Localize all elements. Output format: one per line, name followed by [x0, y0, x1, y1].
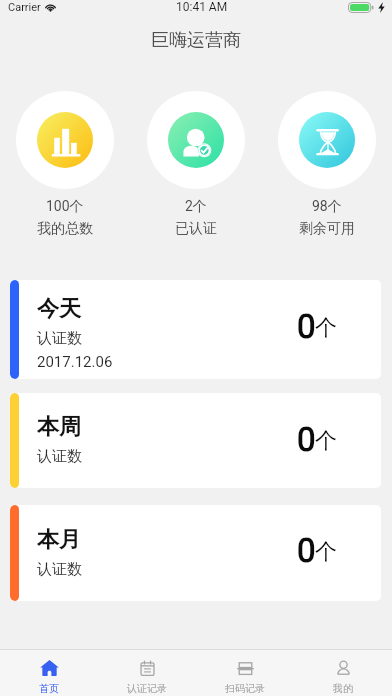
staticText: Carrier: [8, 1, 41, 14]
staticText: 2017.12.06: [37, 353, 113, 371]
staticText: 已认证: [175, 220, 217, 238]
staticText: 本周: [37, 413, 81, 441]
staticText: 个: [315, 314, 337, 342]
staticText: 100个: [46, 198, 84, 216]
button[interactable]: 今天: [10, 280, 381, 379]
button[interactable]: 认证记录: [98, 650, 196, 696]
staticText: 认证数: [37, 329, 82, 348]
staticText: 本月: [37, 526, 81, 554]
staticText: 扫码记录: [225, 682, 265, 695]
staticText: 个: [315, 538, 337, 566]
staticText: 我的总数: [37, 220, 93, 238]
staticText: 98个: [312, 198, 342, 216]
staticText: 认证数: [37, 447, 82, 466]
staticText: 剩余可用: [299, 220, 355, 238]
staticText: 今天: [37, 295, 81, 323]
staticText: 0: [297, 307, 316, 346]
staticText: 2个: [185, 198, 207, 216]
staticText: 巨嗨运营商: [151, 29, 241, 52]
button[interactable]: 扫码记录: [196, 650, 294, 696]
staticText: 认证数: [37, 560, 82, 579]
button[interactable]: 本周: [10, 393, 381, 488]
staticText: 10:41 AM: [176, 0, 228, 14]
button[interactable]: 首页: [0, 650, 98, 696]
staticText: 个: [315, 427, 337, 455]
staticText: 0: [297, 531, 316, 570]
staticText: 首页: [39, 682, 59, 695]
staticText: 我的: [333, 682, 353, 695]
staticText: 0: [297, 420, 316, 459]
button[interactable]: 本月: [10, 505, 381, 601]
button[interactable]: 我的: [294, 650, 392, 696]
staticText: 认证记录: [127, 682, 167, 695]
